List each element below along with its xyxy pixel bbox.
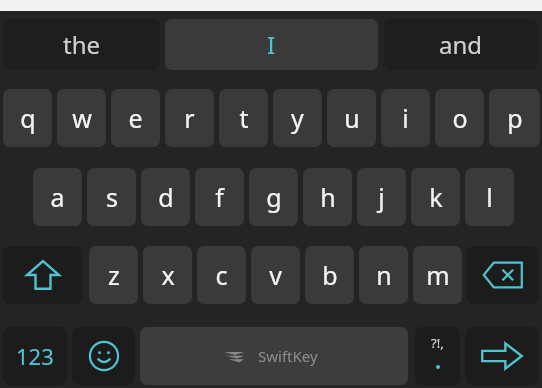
staticText: and <box>439 28 483 61</box>
button[interactable]: the <box>3 19 160 70</box>
button[interactable]: Emoji <box>72 327 135 385</box>
staticText: a <box>50 180 65 214</box>
button[interactable]: e <box>111 89 160 147</box>
button[interactable]: y <box>273 89 322 147</box>
button[interactable]: f <box>195 168 244 226</box>
staticText: s <box>106 180 118 214</box>
button[interactable]: and <box>384 19 538 70</box>
staticText: 123 <box>16 341 54 371</box>
button[interactable]: m <box>413 246 462 304</box>
staticText: ?!, <box>431 334 444 352</box>
staticText: k <box>429 180 443 214</box>
button[interactable]: k <box>411 168 460 226</box>
staticText: d <box>158 180 174 214</box>
staticText: b <box>322 258 338 292</box>
staticText: l <box>486 180 493 214</box>
staticText: j <box>378 180 385 214</box>
button[interactable]: s <box>87 168 136 226</box>
button[interactable]: x <box>143 246 192 304</box>
staticText: e <box>128 101 143 135</box>
button[interactable]: o <box>435 89 484 147</box>
staticText: c <box>215 258 228 292</box>
button[interactable]: Enter <box>465 327 538 385</box>
button[interactable]: I <box>165 19 378 70</box>
button[interactable]: 123 <box>3 327 67 385</box>
button[interactable]: d <box>141 168 190 226</box>
button[interactable]: p <box>489 89 540 147</box>
button[interactable]: w <box>57 89 106 147</box>
staticText: o <box>452 101 468 135</box>
button[interactable]: u <box>327 89 376 147</box>
staticText: z <box>108 258 120 292</box>
staticText: the <box>63 28 101 61</box>
staticText: p <box>507 101 523 135</box>
button[interactable]: Backspace <box>467 246 538 304</box>
button[interactable]: t <box>219 89 268 147</box>
button[interactable]: q <box>3 89 52 147</box>
button[interactable]: v <box>251 246 300 304</box>
button[interactable]: a <box>33 168 82 226</box>
staticText: SwiftKey <box>258 346 318 366</box>
staticText: n <box>376 258 392 292</box>
button[interactable]: h <box>303 168 352 226</box>
staticText: q <box>20 101 36 135</box>
staticText: m <box>426 258 450 292</box>
staticText: i <box>402 101 409 135</box>
button[interactable]: b <box>305 246 354 304</box>
button[interactable]: c <box>197 246 246 304</box>
button[interactable]: r <box>165 89 214 147</box>
staticText: I <box>267 28 276 61</box>
button[interactable]: z <box>89 246 138 304</box>
staticText: h <box>320 180 336 214</box>
button[interactable]: Space <box>140 327 408 385</box>
staticText: t <box>239 101 249 135</box>
staticText: y <box>291 101 304 135</box>
staticText: g <box>266 180 282 214</box>
staticText: f <box>215 180 224 214</box>
button[interactable]: i <box>381 89 430 147</box>
staticText: u <box>344 101 360 135</box>
button[interactable]: n <box>359 246 408 304</box>
staticText: x <box>161 258 175 292</box>
button[interactable]: Shift <box>3 246 82 304</box>
button[interactable]: l <box>465 168 514 226</box>
staticText: v <box>269 258 282 292</box>
button[interactable]: Punctuation <box>415 327 460 385</box>
button[interactable]: j <box>357 168 406 226</box>
button[interactable]: g <box>249 168 298 226</box>
staticText: r <box>184 101 195 135</box>
staticText: w <box>72 101 92 135</box>
